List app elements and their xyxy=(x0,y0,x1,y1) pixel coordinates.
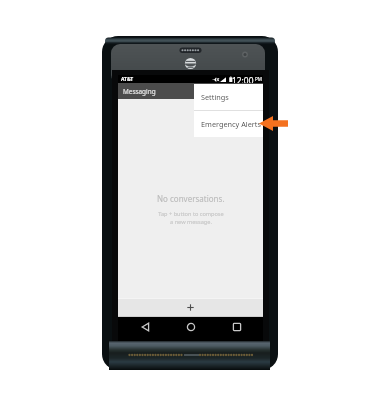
staticText: Settings xyxy=(201,92,229,102)
button[interactable]: Home xyxy=(179,317,203,341)
button[interactable]: Back xyxy=(134,317,158,341)
button[interactable]: Emergency Alerts xyxy=(194,111,263,137)
staticText: Tap + button to compose a new message. xyxy=(158,210,224,226)
staticText: PM xyxy=(255,76,262,82)
button[interactable]: Settings xyxy=(194,84,263,110)
staticText: Messaging xyxy=(123,87,156,96)
button[interactable]: Recent apps xyxy=(225,317,249,341)
button[interactable]: Messaging xyxy=(118,83,263,99)
staticText: Emergency Alerts xyxy=(201,119,261,129)
staticText: No conversations. xyxy=(157,193,225,204)
staticText: 12:00 xyxy=(232,75,254,83)
staticText: AT&T xyxy=(121,76,134,83)
button[interactable]: Compose new message xyxy=(118,298,263,317)
